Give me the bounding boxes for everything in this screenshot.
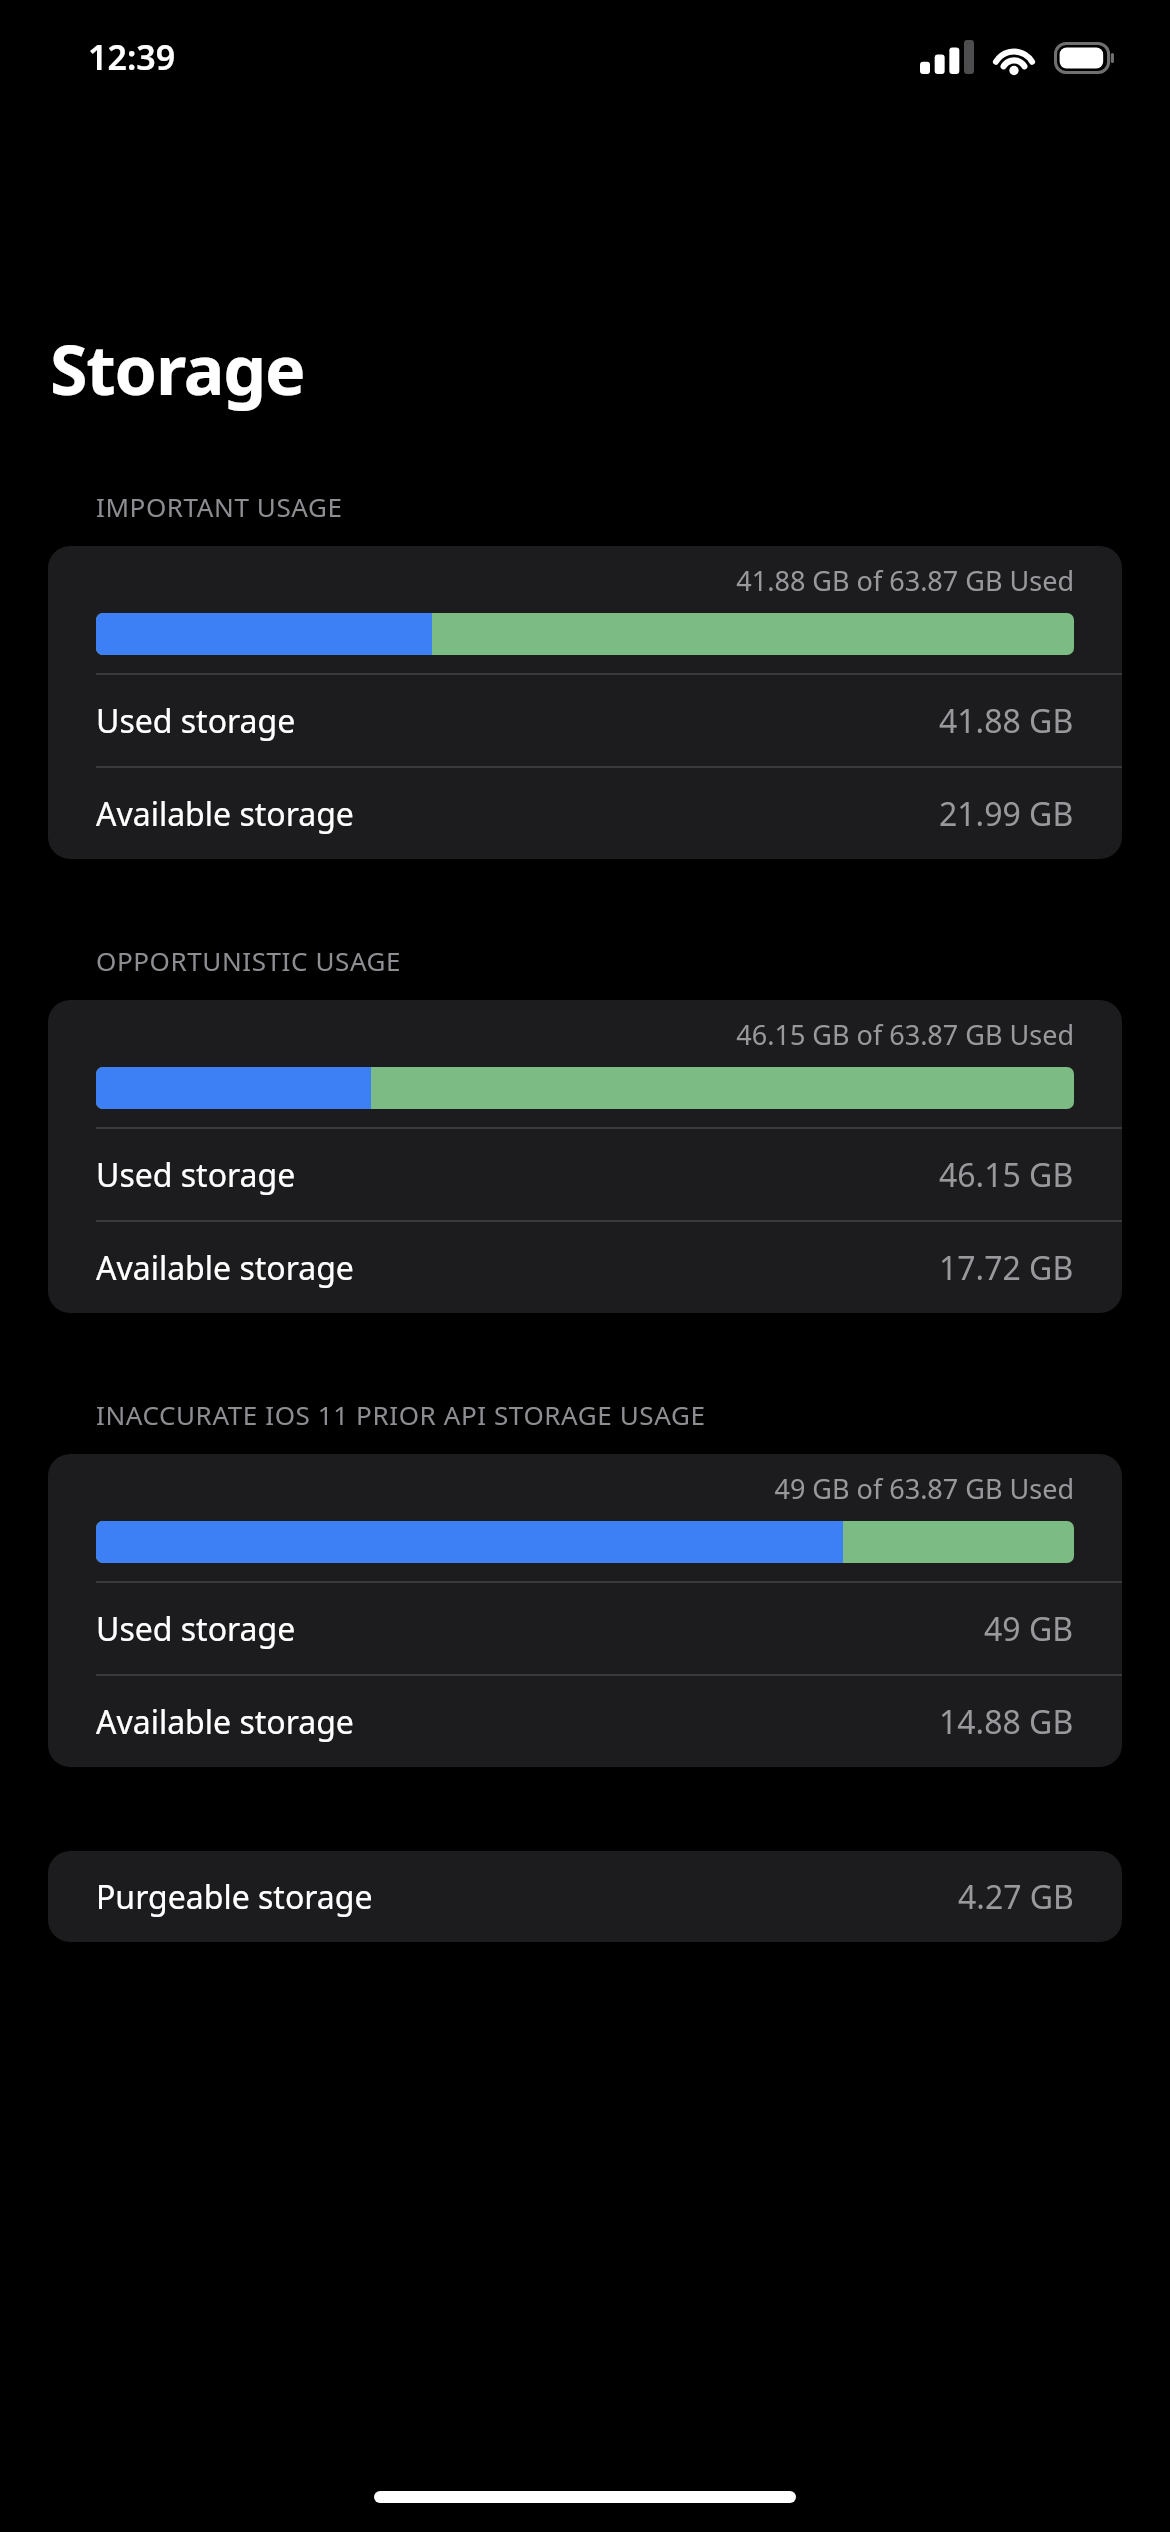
staticText: Storage	[50, 322, 305, 415]
button[interactable]: Available storage	[48, 1222, 1122, 1313]
button[interactable]: Available storage	[48, 1676, 1122, 1767]
staticText: Available storage	[96, 1246, 354, 1290]
staticText: IMPORTANT USAGE	[96, 489, 343, 524]
staticText: Used storage	[96, 1153, 296, 1197]
staticText: Available storage	[96, 792, 354, 836]
staticText: 41.88 GB	[939, 699, 1074, 743]
staticText: Used storage	[96, 1607, 296, 1651]
staticText: Used storage	[96, 699, 296, 743]
staticText: INACCURATE IOS 11 PRIOR API STORAGE USAG…	[96, 1397, 706, 1432]
staticText: 4.27 GB	[958, 1875, 1074, 1919]
staticText: 17.72 GB	[939, 1246, 1074, 1290]
staticText: 41.88 GB of 63.87 GB Used	[96, 562, 1074, 599]
staticText: Purgeable storage	[96, 1875, 373, 1919]
button[interactable]: Purgeable storage	[48, 1851, 1122, 1942]
button[interactable]: Available storage	[48, 768, 1122, 859]
staticText: 49 GB of 63.87 GB Used	[96, 1470, 1074, 1507]
staticText: 49 GB	[984, 1607, 1074, 1651]
staticText: Available storage	[96, 1700, 354, 1744]
staticText: 14.88 GB	[939, 1700, 1074, 1744]
staticText: 12:39	[88, 34, 176, 80]
button[interactable]: Used storage	[48, 675, 1122, 766]
staticText: 46.15 GB of 63.87 GB Used	[96, 1016, 1074, 1053]
other: Battery	[1054, 42, 1116, 74]
staticText: 21.99 GB	[939, 792, 1074, 836]
staticText: OPPORTUNISTIC USAGE	[96, 943, 402, 978]
other: Wi-Fi	[990, 40, 1038, 74]
button[interactable]: Used storage	[48, 1129, 1122, 1220]
other: Cellular signal	[920, 40, 974, 74]
staticText: 46.15 GB	[939, 1153, 1074, 1197]
button[interactable]: Used storage	[48, 1583, 1122, 1674]
